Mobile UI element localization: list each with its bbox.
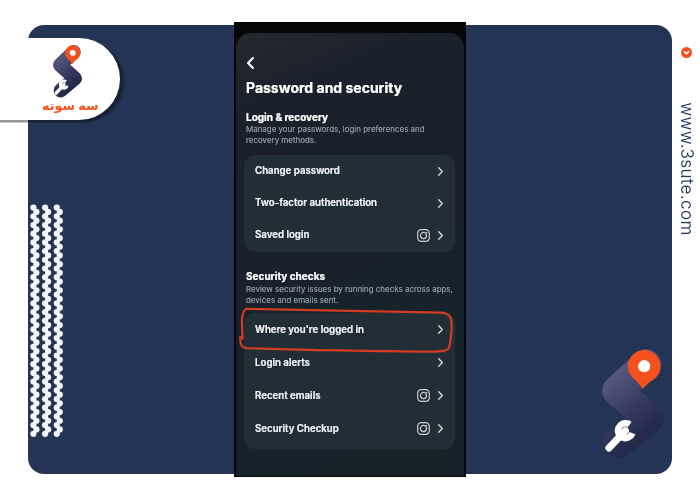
staticText: Recent emails (255, 390, 321, 402)
button[interactable]: Login alerts (244, 346, 455, 379)
staticText: سه سوته (42, 98, 99, 113)
staticText: Security Checkup (255, 423, 339, 435)
staticText: Saved login (255, 229, 310, 241)
button[interactable]: Where you're logged in (244, 313, 455, 346)
staticText: Review security issues by running checks… (246, 284, 453, 305)
button[interactable]: Change password (244, 155, 455, 187)
staticText: Login & recovery (246, 111, 329, 123)
staticText: Login alerts (255, 357, 310, 369)
button[interactable]: Recent emails (244, 379, 455, 412)
staticText: Security checks (246, 270, 326, 282)
button[interactable]: Back (238, 50, 262, 76)
button[interactable]: Security Checkup (244, 412, 455, 445)
staticText: Change password (255, 165, 340, 177)
staticText: www.3sute.com (676, 69, 697, 269)
staticText: Two-factor authentication (255, 197, 378, 209)
staticText: Where you're logged in (255, 324, 364, 336)
button[interactable]: Two-factor authentication (244, 187, 455, 219)
staticText: Password and security (246, 79, 403, 96)
button[interactable]: Saved login (244, 219, 455, 251)
staticText: Manage your passwords, login preferences… (246, 124, 425, 145)
